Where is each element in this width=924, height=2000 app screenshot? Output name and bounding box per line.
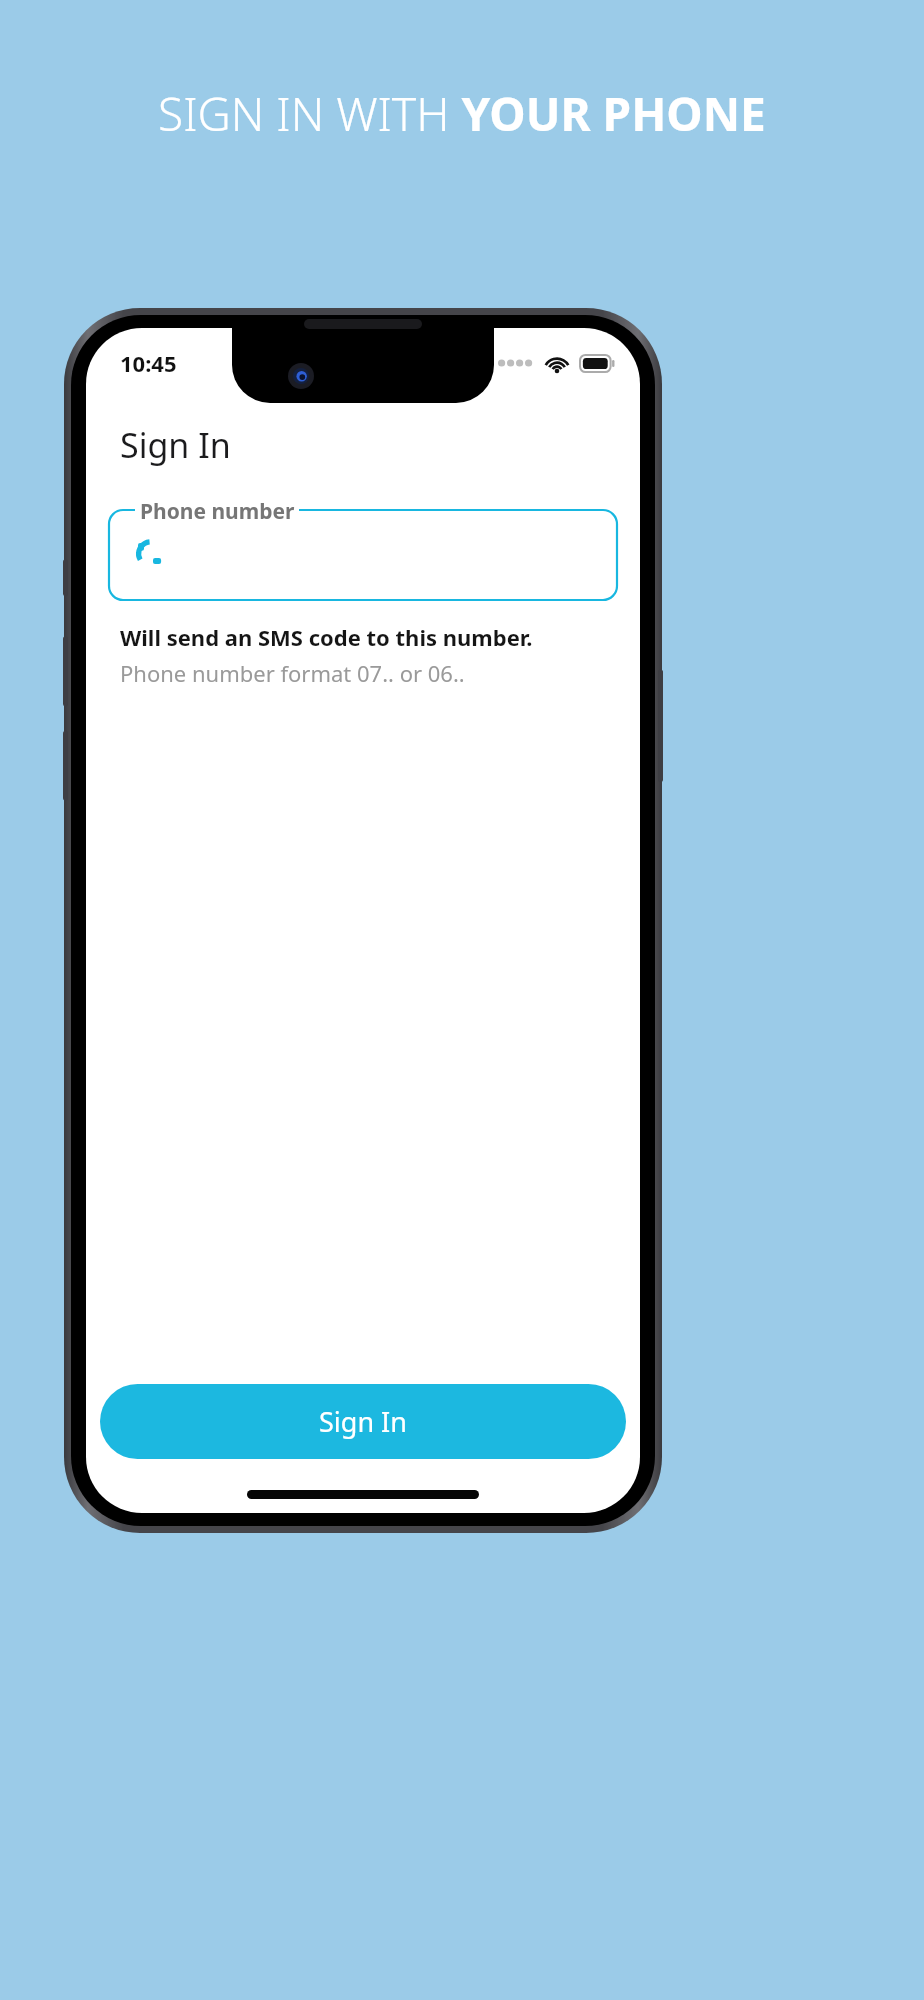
button[interactable]: Phone number [109,510,617,600]
button[interactable]: Sign In [100,1384,626,1459]
staticText: Will send an SMS code to this number. [120,622,533,652]
staticText: Phone number [140,497,295,526]
other: Phone [135,540,165,570]
staticText: Sign In [120,422,231,468]
staticText: Phone number format 07.. or 06.. [120,658,465,688]
staticText: Sign In [319,1403,407,1440]
staticText: 10:45 [120,348,177,378]
staticText: SIGN IN WITH YOUR PHONE [70,82,854,145]
